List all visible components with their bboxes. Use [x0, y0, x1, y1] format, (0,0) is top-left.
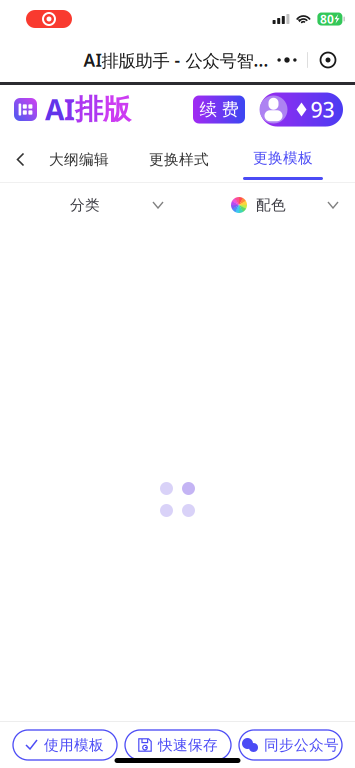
staticText: 更换模板	[253, 149, 313, 167]
staticText: 快速保存	[158, 736, 218, 754]
staticText: AI排版助手 - 公众号智...	[83, 48, 268, 71]
staticText: 版	[103, 92, 131, 127]
staticText: I	[64, 91, 75, 128]
staticText: 更换样式	[149, 150, 209, 168]
staticText: 排	[75, 92, 103, 127]
staticText: 分类	[70, 196, 100, 214]
button[interactable]: 续 费	[193, 95, 245, 123]
button[interactable]: Back	[9, 139, 33, 180]
staticText: 续 费	[199, 99, 238, 120]
button[interactable]: More	[267, 45, 307, 75]
button[interactable]: 大纲编辑	[44, 139, 114, 180]
button[interactable]: Close	[308, 45, 348, 75]
staticText: 使用模板	[44, 736, 104, 754]
staticText: 配色	[256, 196, 286, 214]
staticText: 同步公众号	[264, 736, 339, 754]
button[interactable]: 分类	[0, 183, 179, 227]
staticText: A	[45, 91, 64, 128]
button[interactable]: 配色	[179, 183, 355, 227]
button[interactable]: 快速保存	[125, 730, 231, 760]
button[interactable]: 更换样式	[148, 139, 210, 180]
button[interactable]: 更换模板	[243, 139, 323, 180]
button[interactable]: 同步公众号	[239, 730, 342, 760]
button[interactable]: 93	[260, 92, 343, 126]
staticText: 大纲编辑	[49, 150, 109, 168]
staticText: 80	[320, 11, 334, 27]
staticText: 93	[310, 95, 334, 124]
button[interactable]: 使用模板	[13, 730, 117, 760]
